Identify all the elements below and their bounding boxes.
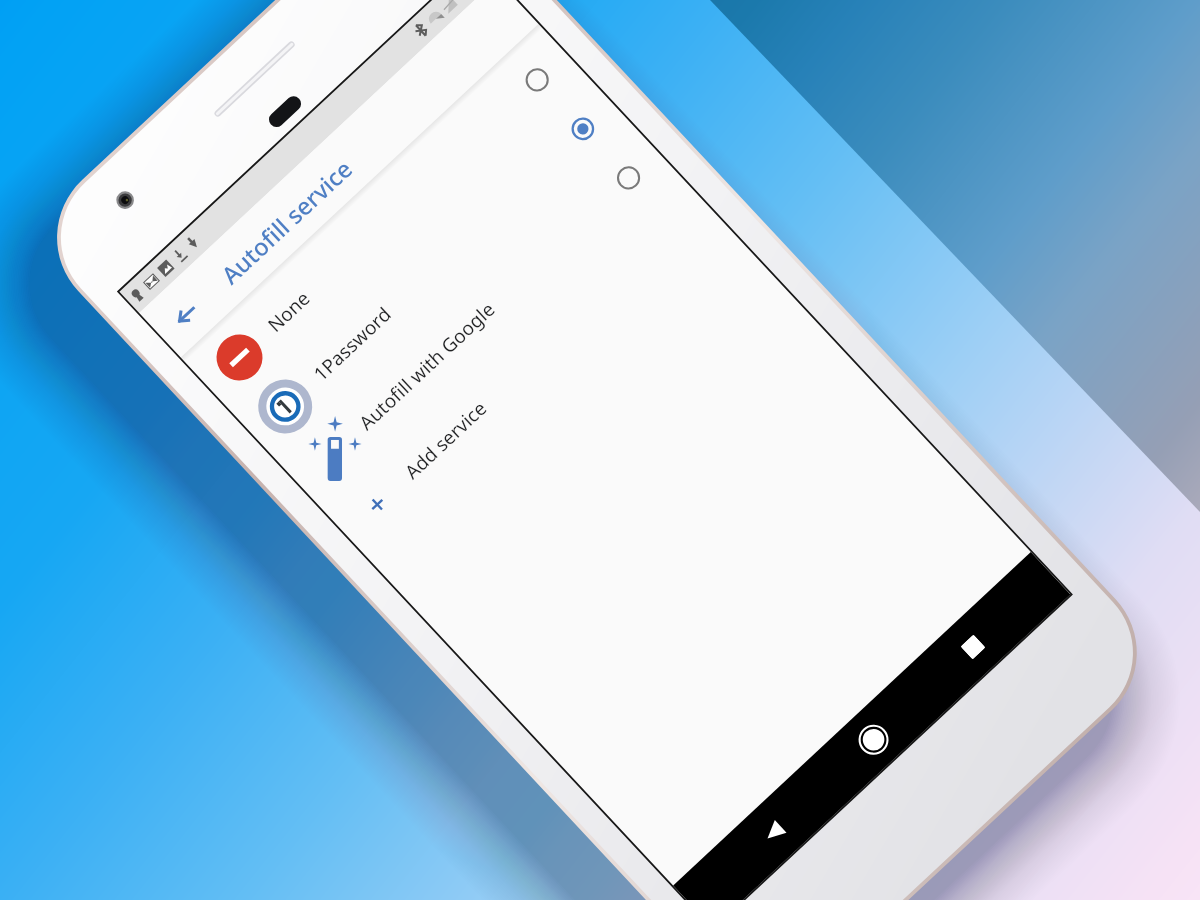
button[interactable]: Autofill with Google <box>276 126 680 509</box>
button[interactable]: Recent apps <box>932 607 1013 687</box>
staticText: Autofill service <box>214 153 359 291</box>
button[interactable]: 1Password <box>231 77 634 460</box>
button[interactable]: None <box>185 28 588 411</box>
button[interactable]: Home <box>833 699 913 780</box>
staticText: Add service <box>399 395 492 485</box>
staticText: None <box>262 285 316 338</box>
button[interactable]: Add service <box>322 175 725 558</box>
staticText: Autofill with Google <box>353 296 501 436</box>
button[interactable]: Back <box>733 792 814 873</box>
staticText: 1Password <box>308 301 396 387</box>
button[interactable]: Navigate up <box>166 294 207 335</box>
